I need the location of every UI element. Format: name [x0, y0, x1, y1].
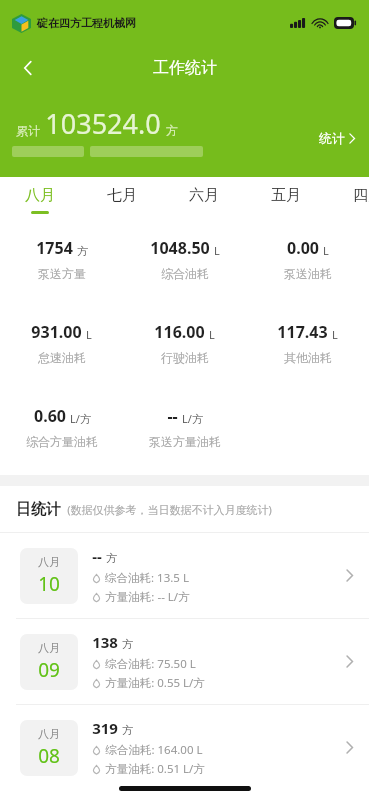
staticText: 泵送方量油耗 [149, 434, 221, 449]
staticText: 1048.50 [150, 237, 210, 259]
staticText: L [323, 243, 329, 258]
staticText: 1754 [36, 237, 73, 259]
staticText: -- [92, 546, 102, 566]
staticText: L [332, 327, 338, 342]
staticText: 怠速油耗 [38, 350, 86, 365]
staticText: 10 [38, 571, 60, 597]
staticText: L [214, 243, 220, 258]
staticText: 行驶油耗 [161, 350, 209, 365]
staticText: 方 [122, 723, 133, 737]
staticText: 泵送方量 [38, 266, 86, 281]
staticText: 八月 [38, 641, 60, 655]
staticText: 117.43 [277, 321, 328, 343]
staticText: 方量油耗: 0.51 L/方 [105, 761, 205, 777]
button[interactable]: 统计 [305, 124, 369, 152]
button[interactable]: 八月 [10, 177, 70, 223]
staticText: 七月 [107, 186, 137, 205]
staticText: 八月 [38, 727, 60, 741]
staticText: 103524.0 [45, 105, 161, 142]
staticText: 统计 [319, 130, 345, 146]
staticText: 八月 [38, 555, 60, 569]
staticText: 碇在四方工程机械网 [37, 16, 136, 30]
staticText: 综合方量油耗 [26, 434, 98, 449]
staticText: L [209, 327, 215, 342]
staticText: 方 [77, 244, 88, 258]
staticText: L/方 [70, 411, 91, 426]
button[interactable]: 六月 [174, 177, 234, 223]
staticText: 08 [38, 743, 60, 769]
staticText: 累计 [16, 123, 40, 138]
staticText: 八月 [25, 186, 55, 205]
staticText: 四月 [353, 186, 369, 205]
staticText: 工作统计 [153, 58, 217, 78]
staticText: 泵送油耗 [284, 266, 332, 281]
staticText: 方 [166, 123, 178, 138]
staticText: 方 [122, 637, 133, 651]
staticText: L/方 [182, 411, 203, 426]
staticText: 综合油耗: 75.50 L [105, 656, 196, 672]
staticText: 0.60 [34, 405, 66, 427]
button[interactable]: Back [8, 48, 48, 88]
staticText: 六月 [189, 186, 219, 205]
button[interactable]: 四月 [338, 177, 369, 223]
button[interactable]: 八月 [0, 619, 369, 704]
staticText: 931.00 [31, 321, 82, 343]
staticText: 116.00 [154, 321, 205, 343]
staticText: 138 [92, 632, 118, 652]
staticText: 其他油耗 [284, 350, 332, 365]
button[interactable]: 八月 [0, 705, 369, 790]
staticText: -- [167, 405, 178, 427]
staticText: L [86, 327, 92, 342]
staticText: 09 [38, 657, 60, 683]
staticText: 五月 [271, 186, 301, 205]
staticText: 综合油耗: 164.00 L [105, 742, 203, 758]
staticText: 0.00 [287, 237, 319, 259]
button[interactable]: 八月 [0, 533, 369, 618]
button[interactable]: 七月 [92, 177, 152, 223]
staticText: 方量油耗: -- L/方 [105, 589, 190, 605]
staticText: 方量油耗: 0.55 L/方 [105, 675, 205, 691]
staticText: (数据仅供参考，当日数据不计入月度统计) [67, 502, 272, 517]
staticText: 综合油耗 [161, 266, 209, 281]
staticText: 319 [92, 718, 118, 738]
staticText: 方 [106, 551, 117, 565]
staticText: 日统计 [16, 500, 61, 519]
button[interactable]: 五月 [256, 177, 316, 223]
staticText: 综合油耗: 13.5 L [105, 570, 189, 586]
